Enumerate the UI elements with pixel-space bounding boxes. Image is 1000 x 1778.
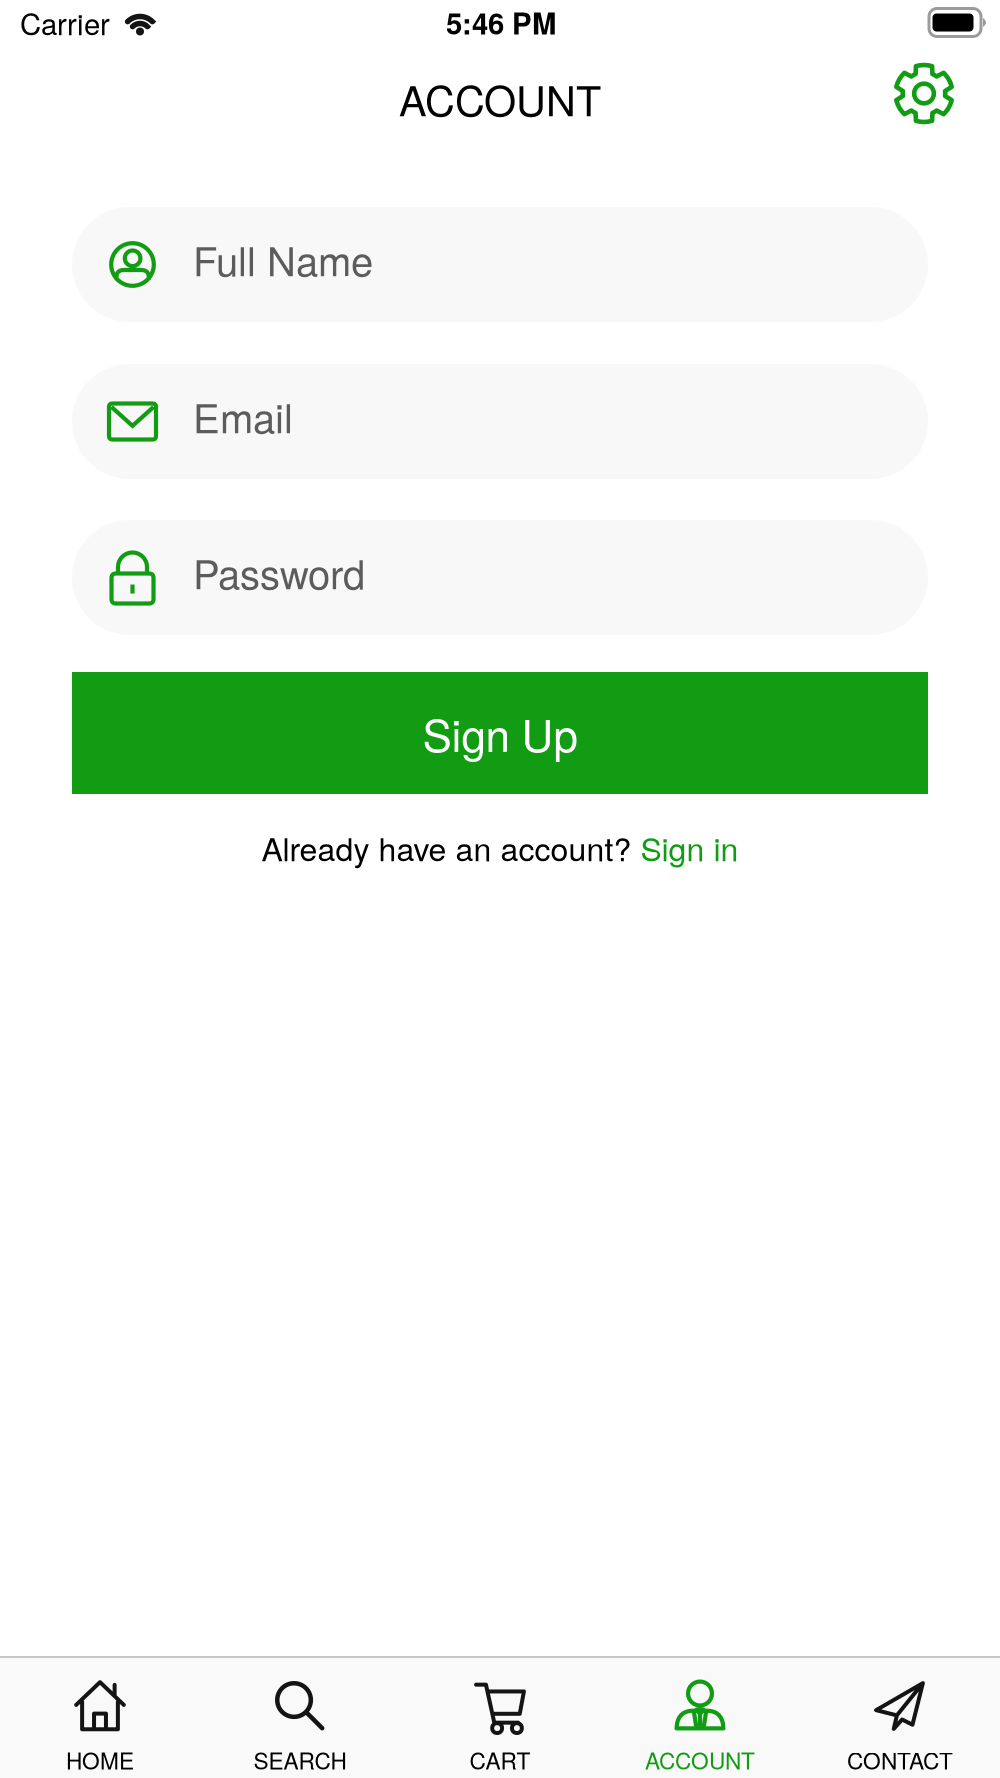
button[interactable]: Sign in: [640, 825, 738, 870]
button[interactable]: CART: [400, 1658, 600, 1776]
staticText: Sign in: [640, 825, 738, 870]
button[interactable]: Password: [72, 520, 928, 635]
staticText: ACCOUNT: [645, 1744, 755, 1776]
button[interactable]: Full Name: [72, 207, 928, 322]
staticText: Sign Up: [422, 702, 577, 764]
staticText: CONTACT: [847, 1744, 953, 1776]
button[interactable]: Sign Up: [72, 672, 928, 794]
button[interactable]: Settings: [895, 64, 953, 122]
button[interactable]: SEARCH: [200, 1658, 400, 1776]
staticText: Already have an account?: [261, 825, 640, 870]
staticText: Carrier: [20, 2, 110, 43]
staticText: Full Name: [193, 231, 373, 287]
staticText: Password: [193, 544, 365, 600]
staticText: ACCOUNT: [399, 70, 601, 127]
button[interactable]: ACCOUNT: [600, 1658, 800, 1776]
button[interactable]: Email: [72, 364, 928, 479]
staticText: Email: [193, 388, 293, 444]
staticText: CART: [469, 1744, 530, 1776]
button[interactable]: HOME: [0, 1658, 200, 1776]
staticText: SEARCH: [253, 1744, 346, 1776]
staticText: 5:46 PM: [446, 2, 556, 43]
staticText: HOME: [66, 1744, 134, 1776]
button[interactable]: CONTACT: [800, 1658, 1000, 1776]
